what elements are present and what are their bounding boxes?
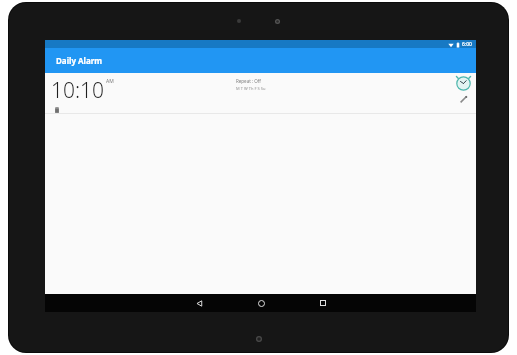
- button[interactable]: Delete alarm: [52, 106, 61, 113]
- staticText: AM: [106, 78, 114, 85]
- staticText: Daily Alarm: [56, 55, 103, 66]
- staticText: 6:00: [462, 41, 472, 48]
- staticText: 10:10: [51, 76, 105, 105]
- button[interactable]: Back: [177, 294, 221, 312]
- button[interactable]: Alarm enabled: [455, 75, 472, 92]
- button[interactable]: Edit alarm: [457, 93, 470, 106]
- button[interactable]: 10:10: [45, 73, 476, 113]
- button[interactable]: Home: [239, 294, 283, 312]
- staticText: M T W Th F S Su: [236, 86, 266, 91]
- staticText: Repeat : Off: [236, 78, 261, 84]
- button[interactable]: Recent apps: [301, 294, 345, 312]
